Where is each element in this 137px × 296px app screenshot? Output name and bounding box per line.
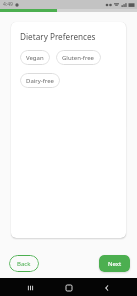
button[interactable]: Dairy-free bbox=[20, 73, 60, 88]
staticText: Dietary Preferences bbox=[20, 31, 96, 42]
button[interactable]: Vegan bbox=[20, 50, 50, 65]
button[interactable]: Back bbox=[100, 281, 113, 294]
button[interactable]: Back bbox=[9, 255, 39, 272]
staticText: Gluten-free bbox=[62, 54, 95, 62]
button[interactable]: Recent apps bbox=[24, 281, 37, 294]
staticText: Back bbox=[17, 260, 31, 268]
button[interactable]: Gluten-free bbox=[56, 50, 101, 65]
button[interactable]: Next bbox=[99, 255, 130, 272]
staticText: Vegan bbox=[26, 54, 44, 62]
button[interactable]: Home bbox=[62, 281, 75, 294]
staticText: Dairy-free bbox=[26, 77, 54, 85]
staticText: 4:49 bbox=[3, 1, 13, 8]
staticText: Next bbox=[108, 260, 122, 268]
